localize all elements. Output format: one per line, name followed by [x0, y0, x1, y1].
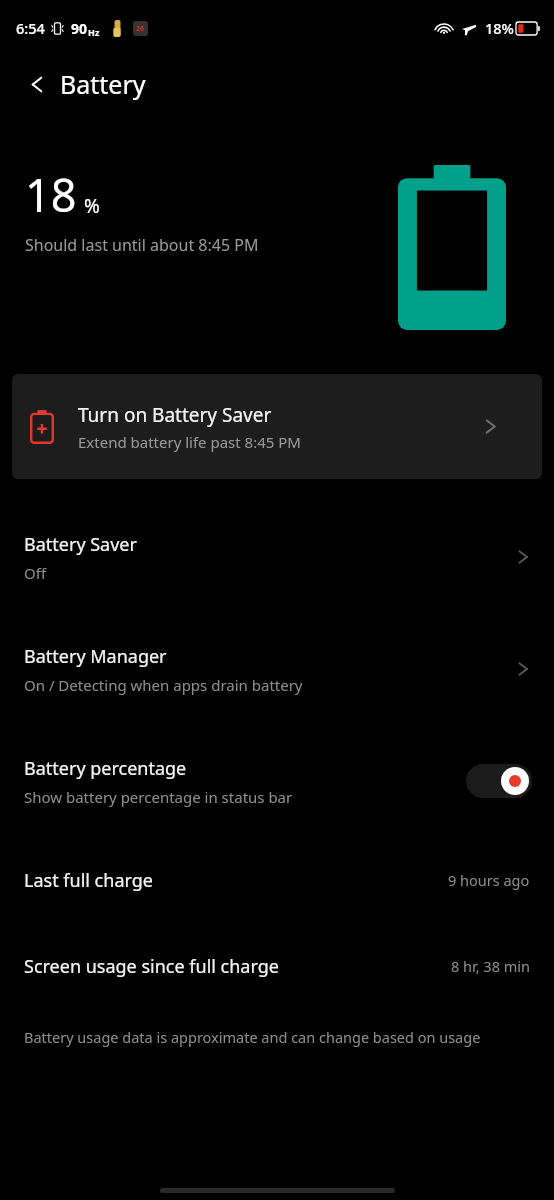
- staticText: Battery: [60, 67, 146, 101]
- staticText: Hz: [88, 26, 100, 38]
- staticText: 26: [136, 24, 145, 34]
- staticText: Screen usage since full charge: [24, 954, 451, 979]
- staticText: Turn on Battery Saver: [78, 402, 272, 428]
- staticText: Show battery percentage in status bar: [24, 787, 293, 807]
- staticText: Battery Saver: [24, 532, 137, 557]
- button[interactable]: Turn on Battery Saver: [12, 374, 542, 479]
- staticText: Battery usage data is approximate and ca…: [24, 1027, 500, 1047]
- staticText: 8 hr, 38 min: [451, 956, 530, 976]
- staticText: Last full charge: [24, 868, 448, 893]
- staticText: %: [84, 193, 100, 219]
- staticText: 9 hours ago: [448, 870, 530, 890]
- button[interactable]: Back: [20, 67, 54, 101]
- button[interactable]: Battery Manager: [0, 613, 554, 725]
- staticText: Should last until about 8:45 PM: [25, 234, 335, 256]
- button[interactable]: Battery Saver: [0, 501, 554, 613]
- staticText: Battery percentage: [24, 756, 187, 781]
- staticText: Battery Manager: [24, 644, 167, 669]
- button[interactable]: Screen usage since full charge: [0, 923, 554, 1009]
- staticText: 18%: [485, 18, 514, 38]
- button[interactable]: Battery percentage: [0, 725, 554, 837]
- button[interactable]: Last full charge: [0, 837, 554, 923]
- staticText: 18: [25, 164, 77, 225]
- staticText: Extend battery life past 8:45 PM: [78, 432, 301, 452]
- staticText: 90: [71, 19, 88, 38]
- staticText: Off: [24, 563, 47, 583]
- staticText: 6:54: [16, 18, 45, 38]
- staticText: On / Detecting when apps drain battery: [24, 675, 303, 695]
